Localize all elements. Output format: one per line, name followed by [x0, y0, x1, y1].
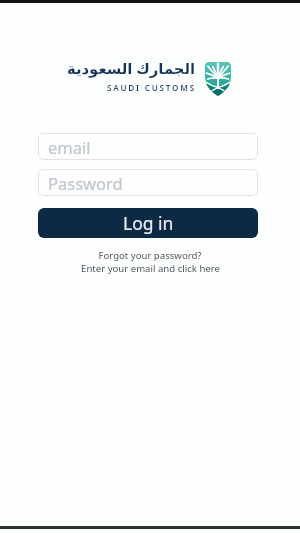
- staticText: Enter your email and click here: [81, 262, 220, 275]
- button[interactable]: Password: [38, 169, 258, 196]
- staticText: Forgot your password?: [98, 249, 202, 262]
- button[interactable]: Forgot your password?: [0, 249, 300, 275]
- staticText: Password: [48, 172, 123, 194]
- staticText: الجمارك السعودية: [67, 58, 196, 78]
- button[interactable]: Log in: [38, 208, 258, 238]
- button[interactable]: email: [38, 133, 258, 160]
- staticText: Log in: [123, 211, 174, 235]
- staticText: SAUDI CUSTOMS: [107, 82, 196, 93]
- staticText: email: [48, 136, 91, 158]
